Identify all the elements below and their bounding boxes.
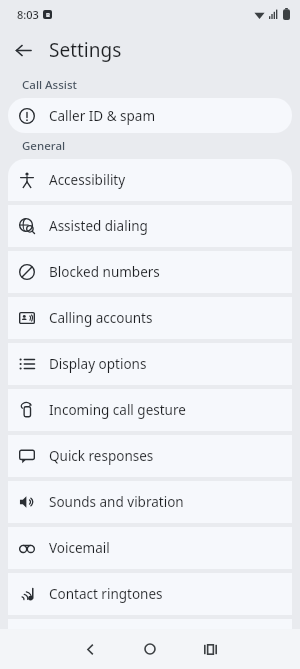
staticText: Quick responses (49, 447, 154, 465)
staticText: Calling accounts (49, 309, 153, 327)
button[interactable]: Display options (8, 343, 292, 385)
button[interactable]: Accessibility (8, 159, 292, 201)
staticText: Blocked numbers (49, 263, 160, 281)
button[interactable]: Back (60, 629, 120, 669)
staticText: Caller ID & spam (49, 107, 156, 125)
staticText: B (46, 11, 50, 19)
staticText: Calling card (49, 631, 124, 649)
button[interactable]: Sounds and vibration (8, 481, 292, 523)
staticText: 8:03 (17, 7, 39, 22)
button[interactable]: Blocked numbers (8, 251, 292, 293)
button[interactable]: Calling accounts (8, 297, 292, 339)
staticText: Contact ringtones (49, 585, 163, 603)
button[interactable]: Quick responses (8, 435, 292, 477)
staticText: Incoming call gesture (49, 401, 186, 419)
button[interactable]: Contact ringtones (8, 573, 292, 615)
button[interactable]: Home (120, 629, 180, 669)
staticText: Voicemail (49, 539, 110, 557)
staticText: Assisted dialing (49, 217, 148, 235)
button[interactable]: Incoming call gesture (8, 389, 292, 431)
staticText: Settings (49, 37, 122, 63)
staticText: General (22, 138, 66, 154)
button[interactable]: Assisted dialing (8, 205, 292, 247)
button[interactable]: Back (6, 33, 40, 67)
staticText: Sounds and vibration (49, 493, 184, 511)
button[interactable]: Recents (180, 629, 240, 669)
button[interactable]: Voicemail (8, 527, 292, 569)
staticText: Call Assist (22, 77, 77, 93)
staticText: Accessibility (49, 171, 126, 189)
button[interactable]: Caller ID & spam (8, 98, 292, 133)
button[interactable]: Calling card (8, 619, 292, 661)
staticText: Display options (49, 355, 147, 373)
